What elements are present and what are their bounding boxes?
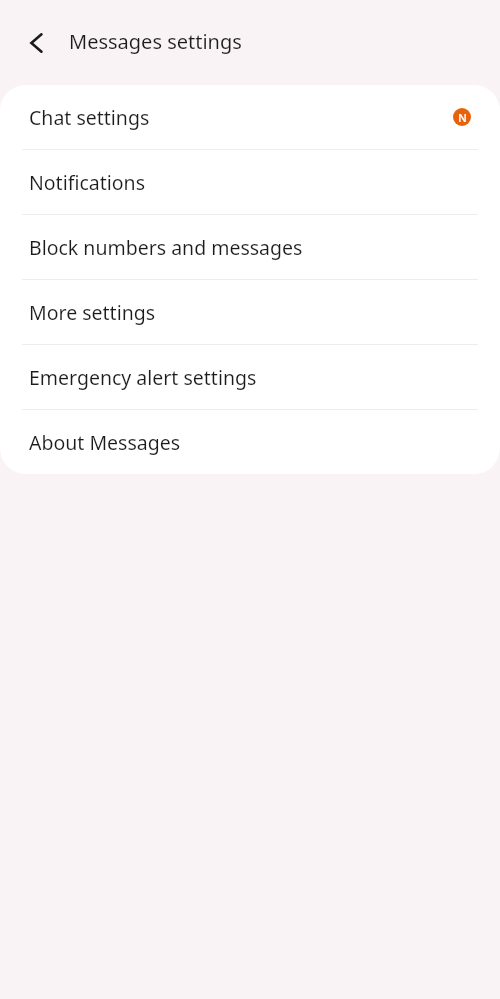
staticText: Emergency alert settings bbox=[29, 364, 257, 391]
staticText: Block numbers and messages bbox=[29, 234, 303, 261]
button[interactable]: Emergency alert settings bbox=[0, 345, 500, 409]
button[interactable]: Back bbox=[23, 29, 51, 57]
button[interactable]: Chat settings bbox=[0, 85, 500, 149]
staticText: About Messages bbox=[29, 429, 181, 456]
staticText: Notifications bbox=[29, 169, 145, 196]
staticText: More settings bbox=[29, 299, 156, 326]
staticText: Messages settings bbox=[69, 28, 242, 55]
staticText: N bbox=[458, 110, 467, 125]
button[interactable]: About Messages bbox=[0, 410, 500, 474]
staticText: Chat settings bbox=[29, 104, 150, 131]
button[interactable]: Notifications bbox=[0, 150, 500, 214]
button[interactable]: More settings bbox=[0, 280, 500, 344]
button[interactable]: Block numbers and messages bbox=[0, 215, 500, 279]
